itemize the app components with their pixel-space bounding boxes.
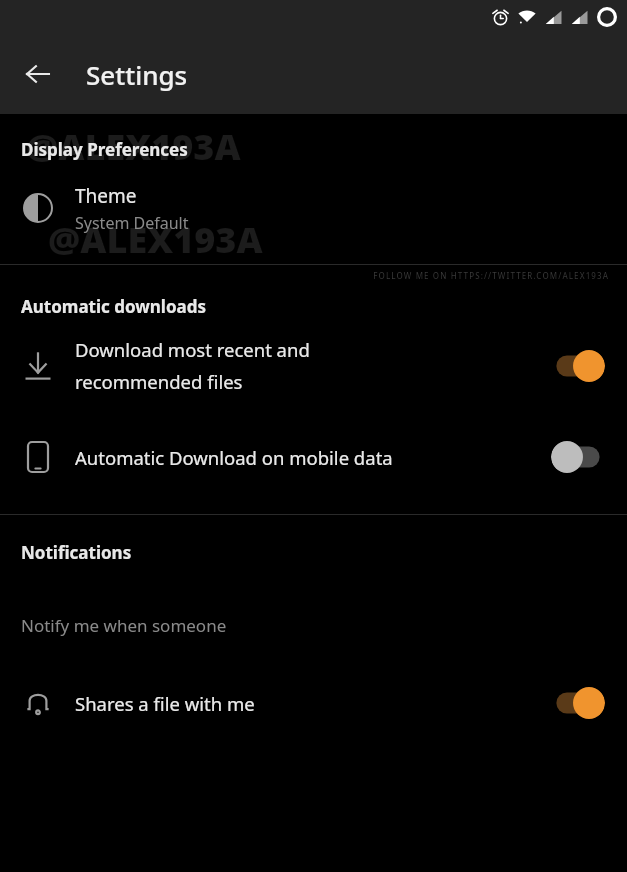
staticText: Automatic Download on mobile data <box>75 445 551 470</box>
button[interactable]: Automatic Download on mobile data <box>551 440 605 474</box>
staticText: Theme <box>75 183 137 209</box>
staticText: Notify me when someone <box>21 614 227 637</box>
button[interactable]: Download most recent and recommended fil… <box>551 349 605 383</box>
staticText: @ALEX193A <box>48 215 263 264</box>
staticText: Shares a file with me <box>75 691 551 716</box>
staticText: Download most recent and recommended fil… <box>75 337 551 395</box>
staticText: FOLLOW ME ON HTTPS://TWITTER.COM/ALEX193… <box>0 270 609 281</box>
staticText: Settings <box>86 57 188 92</box>
staticText: @ALEX193A <box>26 122 241 171</box>
staticText: Automatic downloads <box>21 295 207 318</box>
button[interactable]: Back <box>12 48 64 100</box>
button[interactable]: Download most recent and recommended fil… <box>0 318 627 414</box>
staticText: Notifications <box>21 541 132 564</box>
staticText: System Default <box>75 212 189 234</box>
button[interactable]: Shares a file with me <box>551 686 605 720</box>
staticText: Display Preferences <box>21 138 188 161</box>
button[interactable]: Theme <box>0 161 627 255</box>
button[interactable]: Shares a file with me <box>0 665 627 741</box>
button[interactable]: Automatic Download on mobile data <box>0 414 627 500</box>
